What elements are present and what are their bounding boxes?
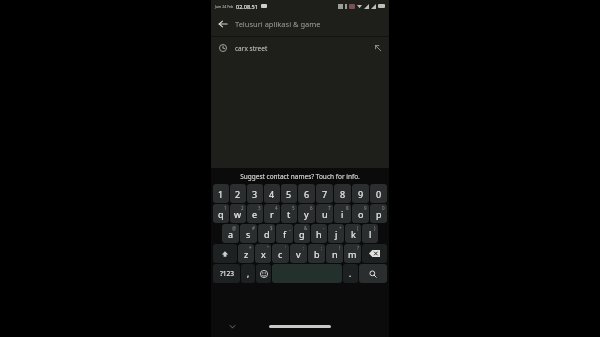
button[interactable]: u (316, 204, 333, 223)
staticText: # (252, 225, 255, 231)
staticText: h (316, 228, 322, 240)
staticText: d (264, 228, 270, 240)
staticText: & (304, 225, 308, 231)
button[interactable]: Hide keyboard (225, 319, 239, 333)
button[interactable]: n (326, 244, 343, 263)
staticText: - (323, 225, 325, 231)
button[interactable]: g (294, 224, 310, 243)
staticText: i (341, 208, 344, 220)
button[interactable]: Search (359, 264, 387, 283)
button[interactable]: 5 (281, 184, 297, 203)
button[interactable]: Insert suggestion (367, 37, 389, 59)
button[interactable]: 6 (298, 184, 315, 203)
staticText: ) (374, 225, 376, 231)
staticText: 3 (258, 205, 261, 211)
button[interactable]: , (241, 264, 255, 283)
button[interactable]: z (238, 244, 254, 263)
button[interactable]: y (298, 204, 315, 223)
button[interactable]: w (230, 204, 246, 223)
staticText: t (287, 208, 291, 220)
button[interactable]: Backspace (362, 244, 387, 263)
staticText: Jum 24 Feb (215, 4, 234, 9)
staticText: 7 (322, 188, 328, 200)
button[interactable]: j (328, 224, 344, 243)
button[interactable]: 9 (352, 184, 369, 203)
button[interactable]: s (240, 224, 257, 243)
button[interactable]: v (290, 244, 307, 263)
staticText: n (332, 248, 338, 260)
staticText: l (369, 228, 372, 240)
staticText: w (234, 208, 242, 220)
button[interactable]: a (222, 224, 239, 243)
staticText: $ (270, 225, 273, 231)
staticText: _ (289, 225, 291, 231)
staticText: b (314, 248, 320, 260)
staticText: ; (321, 245, 323, 251)
button[interactable]: h (311, 224, 327, 243)
button[interactable]: t (281, 204, 297, 223)
staticText: 0 (382, 205, 385, 211)
button[interactable]: carx street (211, 37, 389, 59)
staticText: : (303, 245, 305, 251)
staticText: . (349, 268, 352, 279)
button[interactable]: . (343, 264, 358, 283)
staticText: 3 (252, 188, 258, 200)
staticText: 02.08.51 (236, 3, 258, 10)
button[interactable]: f (276, 224, 293, 243)
staticText: x (261, 248, 266, 260)
button[interactable]: c (272, 244, 289, 263)
staticText: a (228, 228, 234, 240)
button[interactable]: p (370, 204, 387, 223)
staticText: u (322, 208, 328, 220)
staticText: 4 (269, 188, 275, 200)
button[interactable]: 3 (247, 184, 263, 203)
button[interactable]: q (213, 204, 229, 223)
button[interactable]: ?123 (213, 264, 240, 283)
button[interactable]: m (344, 244, 361, 263)
staticText: 6 (304, 188, 310, 200)
staticText: m (348, 248, 357, 260)
staticText: ? (357, 245, 359, 251)
button[interactable]: 8 (334, 184, 351, 203)
button[interactable]: Emoji (256, 264, 271, 283)
staticText: * (249, 245, 252, 251)
staticText: 9 (364, 205, 367, 211)
staticText: ! (339, 245, 341, 251)
staticText: Suggest contact names? Touch for info. (240, 172, 360, 181)
staticText: q (218, 208, 224, 220)
button[interactable]: Back (211, 12, 235, 36)
staticText: ' (285, 245, 287, 251)
button[interactable]: o (352, 204, 369, 223)
staticText: , (247, 268, 250, 279)
button[interactable]: b (308, 244, 325, 263)
button[interactable]: e (247, 204, 263, 223)
button[interactable]: 4 (264, 184, 280, 203)
staticText: 2 (241, 205, 244, 211)
staticText: g (299, 228, 305, 240)
button[interactable]: k (345, 224, 361, 243)
staticText: 6 (310, 205, 313, 211)
button[interactable]: Suggest contact names? Touch for info. (211, 168, 389, 184)
staticText: j (335, 228, 338, 240)
staticText: @ (232, 225, 237, 231)
staticText: 1 (224, 205, 227, 211)
staticText: 2 (235, 188, 241, 200)
button[interactable]: i (334, 204, 351, 223)
button[interactable]: 2 (230, 184, 246, 203)
button[interactable]: d (258, 224, 275, 243)
button[interactable]: r (264, 204, 280, 223)
button[interactable]: l (362, 224, 378, 243)
button[interactable]: 1 (213, 184, 229, 203)
button[interactable]: x (255, 244, 271, 263)
staticText: p (376, 208, 382, 220)
staticText: " (267, 245, 269, 251)
staticText: carx street (235, 44, 268, 53)
staticText: + (339, 225, 342, 231)
button[interactable]: Telusuri aplikasi & game (235, 12, 389, 36)
staticText: s (246, 228, 251, 240)
staticText: y (304, 208, 309, 220)
button[interactable]: Shift (213, 244, 237, 263)
button[interactable]: 0 (370, 184, 387, 203)
button[interactable]: 7 (316, 184, 333, 203)
